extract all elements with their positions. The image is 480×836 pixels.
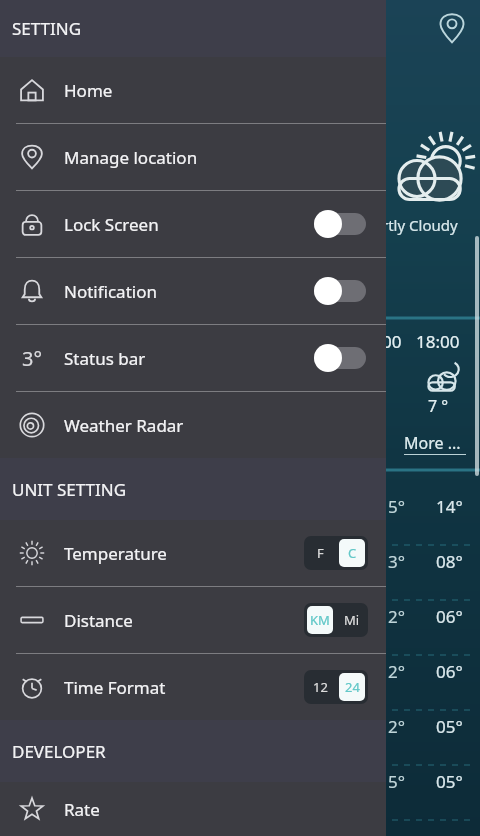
staticText: Mi (344, 611, 360, 629)
staticText: 05° (436, 715, 463, 738)
staticText: 7 ° (428, 395, 449, 417)
staticText: 2° (388, 605, 405, 628)
button[interactable]: F (304, 536, 368, 570)
staticText: 2° (388, 660, 405, 683)
staticText: 12 (313, 678, 328, 696)
button[interactable]: KM (304, 603, 368, 637)
staticText: 2° (388, 715, 405, 738)
button[interactable]: Home (0, 57, 386, 123)
staticText: 05° (436, 770, 463, 793)
staticText: DEVELOPER (12, 740, 106, 763)
staticText: Lock Screen (64, 213, 159, 236)
staticText: 08° (436, 550, 463, 573)
staticText: Rate (64, 798, 100, 821)
staticText: KM (310, 611, 330, 629)
staticText: 3° (22, 345, 42, 371)
staticText: Time Format (64, 676, 166, 699)
button[interactable]: Notification (0, 258, 386, 324)
button[interactable]: Temperature (0, 520, 386, 586)
staticText: 00 (382, 330, 402, 353)
staticText: rtly Cloudy (382, 215, 458, 235)
staticText: Temperature (64, 542, 167, 565)
staticText: C (348, 544, 357, 562)
button[interactable]: Toggle (312, 343, 368, 373)
staticText: 24 (345, 678, 360, 696)
button[interactable]: More ... (404, 432, 466, 455)
staticText: 5° (388, 495, 405, 518)
staticText: More ... (404, 432, 461, 454)
staticText: Manage location (64, 146, 198, 169)
staticText: Weather Radar (64, 414, 184, 437)
button[interactable]: Lock Screen (0, 191, 386, 257)
button[interactable]: Toggle (312, 276, 368, 306)
staticText: Status bar (64, 347, 146, 370)
button[interactable]: Toggle (312, 209, 368, 239)
staticText: 14° (436, 495, 463, 518)
button[interactable]: Distance (0, 587, 386, 653)
button[interactable]: 12 (304, 670, 368, 704)
staticText: 3° (388, 550, 405, 573)
button[interactable]: Weather Radar (0, 392, 386, 458)
staticText: Notification (64, 280, 157, 303)
staticText: 18:00 (416, 330, 460, 353)
staticText: UNIT SETTING (12, 478, 127, 501)
staticText: SETTING (12, 17, 82, 40)
button[interactable]: Rate (0, 782, 386, 836)
staticText: Home (64, 79, 113, 102)
button[interactable]: Location (436, 12, 468, 44)
staticText: F (317, 544, 324, 562)
button[interactable]: Manage location (0, 124, 386, 190)
button[interactable]: 3° (0, 325, 386, 391)
button[interactable]: Time Format (0, 654, 386, 720)
staticText: 06° (436, 605, 463, 628)
staticText: Distance (64, 609, 133, 632)
staticText: 06° (436, 660, 463, 683)
staticText: 5° (388, 770, 405, 793)
